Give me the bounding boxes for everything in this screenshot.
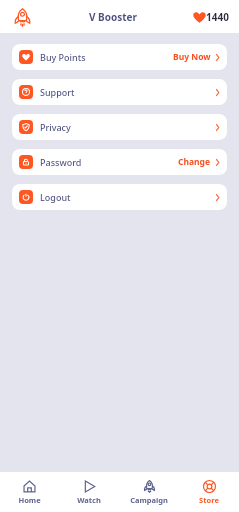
button[interactable]: Home [0, 472, 59, 512]
staticText: Store [199, 495, 219, 505]
button[interactable]: Watch [59, 472, 119, 512]
staticText: Buy Points [40, 51, 86, 63]
staticText: Change [178, 156, 211, 168]
button[interactable]: Buy Points [12, 44, 227, 70]
staticText: Privacy [40, 121, 71, 133]
button[interactable]: Store [179, 472, 239, 512]
button[interactable]: Password [12, 149, 227, 175]
staticText: Home [18, 495, 41, 505]
staticText: 1440 [206, 10, 229, 24]
staticText: Support [40, 86, 75, 98]
button[interactable]: Boost [10, 5, 34, 29]
button[interactable]: Support [12, 79, 227, 105]
button[interactable]: 1440 [193, 10, 229, 24]
staticText: Watch [77, 495, 101, 505]
staticText: Campaign [130, 495, 168, 505]
button[interactable]: Privacy [12, 114, 227, 140]
staticText: Buy Now [173, 51, 211, 63]
button[interactable]: Campaign [119, 472, 179, 512]
button[interactable]: Logout [12, 184, 227, 210]
staticText: V Booster [89, 10, 138, 24]
staticText: Logout [40, 191, 71, 203]
staticText: Password [40, 156, 82, 168]
